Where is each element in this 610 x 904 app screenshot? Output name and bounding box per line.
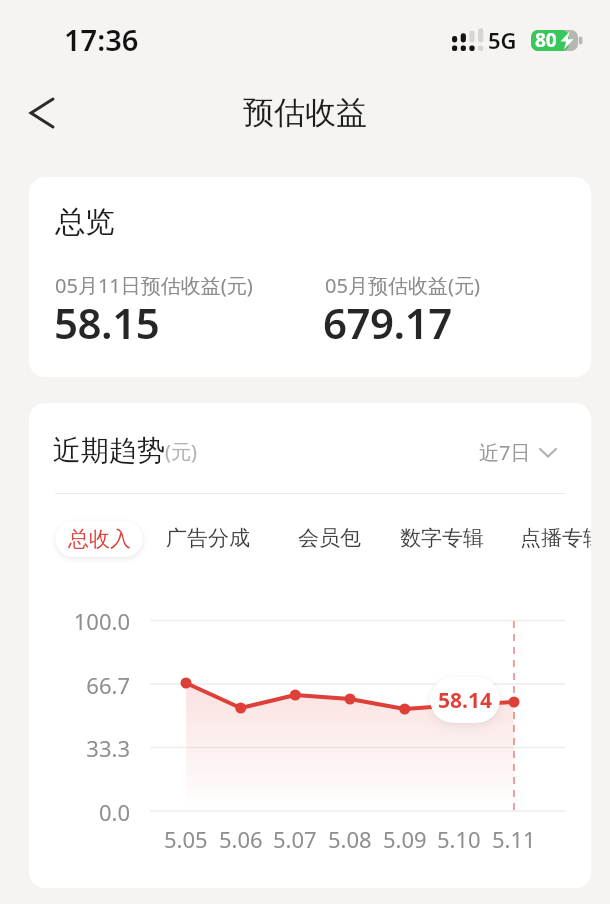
button[interactable] bbox=[24, 96, 60, 132]
staticText: 0.0 bbox=[98, 797, 130, 825]
button[interactable]: 近7日 bbox=[479, 439, 557, 466]
staticText: 679.17 bbox=[323, 294, 452, 351]
staticText: 总收入 bbox=[68, 526, 131, 552]
button[interactable]: 会员包 bbox=[298, 525, 361, 551]
staticText: 5.06 bbox=[219, 824, 263, 854]
staticText: 5.08 bbox=[328, 824, 372, 854]
staticText: 5.07 bbox=[273, 824, 317, 854]
staticText: 66.7 bbox=[86, 670, 130, 698]
staticText: 近7日 bbox=[479, 439, 531, 466]
button[interactable]: 数字专辑 bbox=[400, 525, 484, 551]
staticText: 5.10 bbox=[437, 824, 481, 854]
staticText: 5.05 bbox=[164, 824, 208, 854]
button[interactable]: 总收入 bbox=[55, 521, 143, 557]
button[interactable]: 总览 bbox=[29, 177, 591, 377]
staticText: 5.09 bbox=[383, 824, 427, 854]
staticText: 预估收益 bbox=[243, 93, 367, 132]
staticText: (元) bbox=[165, 438, 197, 465]
staticText: 33.3 bbox=[86, 733, 130, 761]
staticText: 17:36 bbox=[64, 20, 139, 59]
staticText: 100.0 bbox=[73, 606, 130, 634]
button[interactable]: 广告分成 bbox=[166, 525, 250, 551]
staticText: 58.14 bbox=[438, 686, 492, 715]
staticText: 5.11 bbox=[492, 824, 536, 854]
staticText: 05月预估收益(元) bbox=[325, 272, 480, 299]
button[interactable]: 点播专辑 bbox=[520, 525, 591, 551]
staticText: 58.15 bbox=[54, 294, 160, 351]
staticText: 5G bbox=[488, 25, 517, 55]
staticText: 80 bbox=[535, 27, 557, 53]
staticText: 总览 bbox=[55, 203, 115, 241]
staticText: 05月11日预估收益(元) bbox=[55, 272, 253, 299]
staticText: 近期趋势 bbox=[53, 433, 165, 468]
